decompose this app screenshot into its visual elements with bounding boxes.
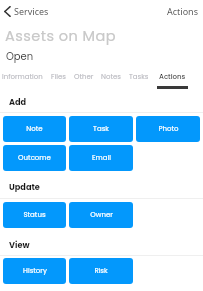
staticText: History <box>23 266 47 276</box>
button[interactable]: Note <box>3 116 66 142</box>
button[interactable]: Other <box>74 72 94 89</box>
staticText: Other <box>74 72 94 82</box>
button[interactable]: Email <box>69 145 133 171</box>
button[interactable]: History <box>3 258 66 284</box>
staticText: Risk <box>94 266 108 276</box>
staticText: Actions <box>167 5 198 17</box>
staticText: Photo <box>158 124 179 134</box>
staticText: Outcome <box>18 153 51 163</box>
staticText: Owner <box>90 210 113 220</box>
staticText: Status <box>23 210 46 220</box>
button[interactable]: Notes <box>101 72 121 89</box>
staticText: Note <box>26 124 43 134</box>
staticText: Notes <box>101 72 121 82</box>
staticText: Task <box>93 124 109 134</box>
staticText: Email <box>92 153 111 163</box>
staticText: Actions <box>159 72 186 82</box>
staticText: Assets on Map <box>5 26 116 46</box>
button[interactable]: Files <box>51 72 66 89</box>
button[interactable]: Owner <box>69 202 133 228</box>
staticText: Tasks <box>129 72 149 82</box>
button[interactable]: Status <box>3 202 66 228</box>
button[interactable]: Outcome <box>3 145 66 171</box>
staticText: Files <box>51 72 66 82</box>
other: Back to Services <box>4 6 11 17</box>
button[interactable]: Back to Services <box>2 3 51 19</box>
button[interactable]: Tasks <box>129 72 149 89</box>
staticText: Add <box>9 96 27 107</box>
staticText: Update <box>9 181 40 192</box>
button[interactable]: Photo <box>136 116 200 142</box>
staticText: Services <box>14 5 49 17</box>
staticText: Information <box>2 72 43 82</box>
button[interactable]: Actions <box>157 72 188 89</box>
button[interactable]: Actions <box>161 3 203 19</box>
button[interactable]: Task <box>69 116 133 142</box>
button[interactable]: Risk <box>69 258 133 284</box>
staticText: Open <box>6 49 34 63</box>
button[interactable]: Information <box>2 72 43 89</box>
staticText: View <box>9 239 30 250</box>
